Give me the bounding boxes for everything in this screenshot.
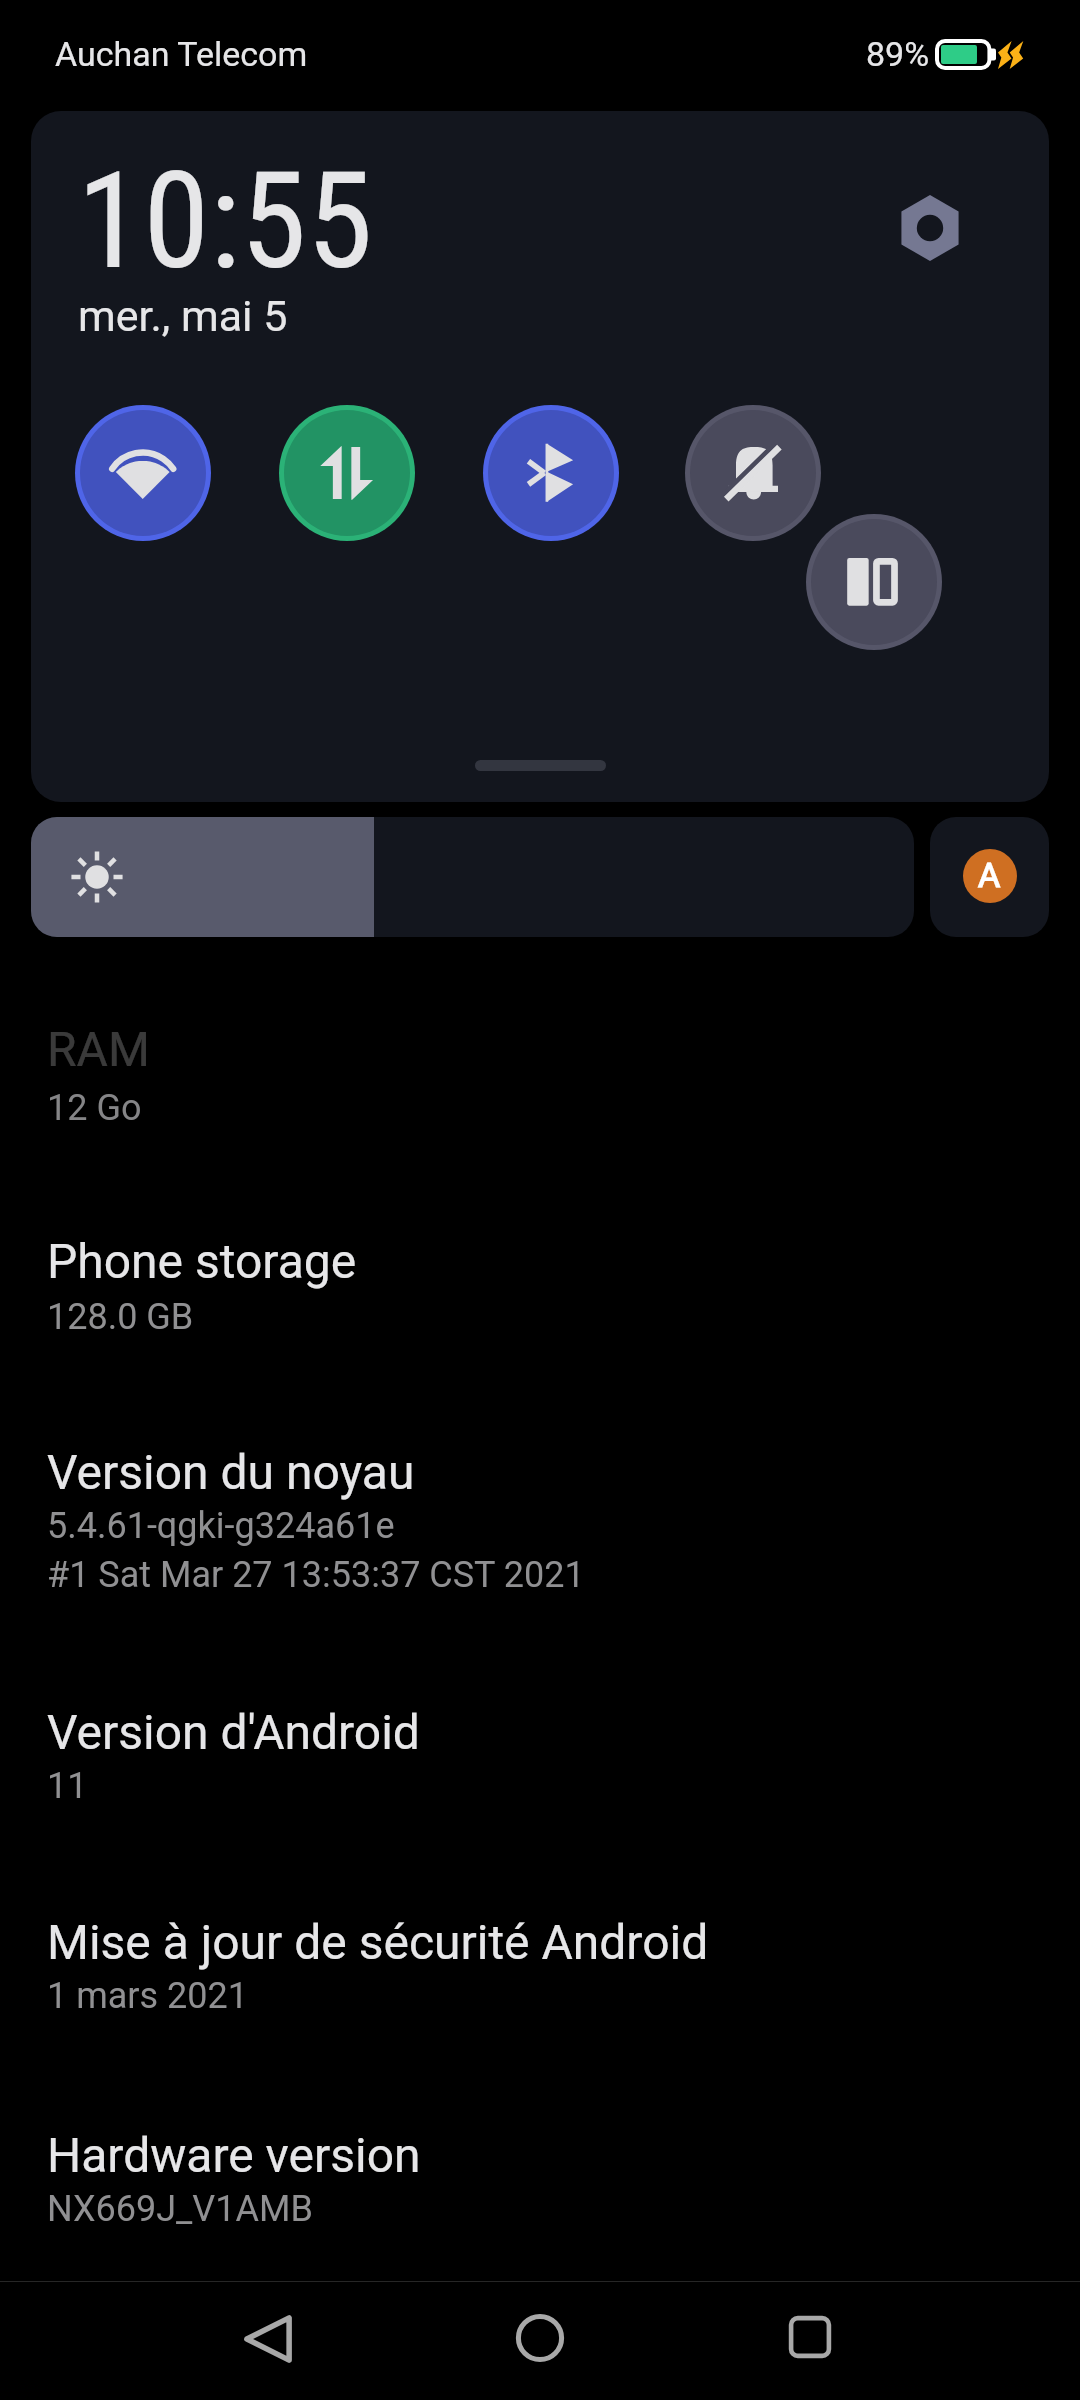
staticText: 89%: [866, 34, 930, 74]
staticText: RAM: [47, 1021, 150, 1077]
staticText: Mise à jour de sécurité Android: [47, 1914, 709, 1970]
button[interactable]: Settings: [882, 180, 978, 276]
button[interactable]: Phone storage: [0, 1225, 1080, 1344]
staticText: Phone storage: [47, 1233, 357, 1289]
staticText: Hardware version: [47, 2127, 421, 2183]
button[interactable]: Back: [195, 2282, 339, 2400]
button[interactable]: Wi-Fi: [75, 405, 211, 541]
button[interactable]: Mise à jour de sécurité Android: [0, 1906, 1080, 2025]
staticText: Version d'Android: [47, 1704, 420, 1760]
button[interactable]: Bluetooth: [483, 405, 619, 541]
button[interactable]: Version du noyau: [0, 1436, 1080, 1604]
button[interactable]: RAM: [0, 1013, 1080, 1132]
staticText: mer., mai 5: [78, 291, 288, 341]
staticText: A: [978, 855, 1001, 895]
staticText: Version du noyau: [47, 1444, 415, 1500]
button[interactable]: Mobile data: [279, 405, 415, 541]
button[interactable]: Auto brightness: [930, 817, 1049, 937]
staticText: 5.4.61-qgki-g324a61e: [47, 1505, 395, 1547]
button[interactable]: Brightness: [31, 817, 914, 937]
button[interactable]: Home: [468, 2282, 612, 2400]
button[interactable]: Split screen: [806, 514, 942, 650]
staticText: Auchan Telecom: [55, 34, 308, 74]
staticText: 128.0 GB: [47, 1296, 194, 1338]
staticText: 12 Go: [47, 1087, 142, 1129]
button[interactable]: Version d'Android: [0, 1696, 1080, 1815]
button[interactable]: Hardware version: [0, 2119, 1080, 2238]
button[interactable]: Silent mode: [685, 405, 821, 541]
staticText: 10:55: [77, 143, 373, 300]
button[interactable]: Recents: [738, 2282, 882, 2400]
staticText: NX669J_V1AMB: [47, 2188, 313, 2230]
staticText: 11: [47, 1765, 88, 1807]
staticText: 1 mars 2021: [47, 1975, 248, 2017]
staticText: #1 Sat Mar 27 13:53:37 CST 2021: [47, 1554, 585, 1596]
